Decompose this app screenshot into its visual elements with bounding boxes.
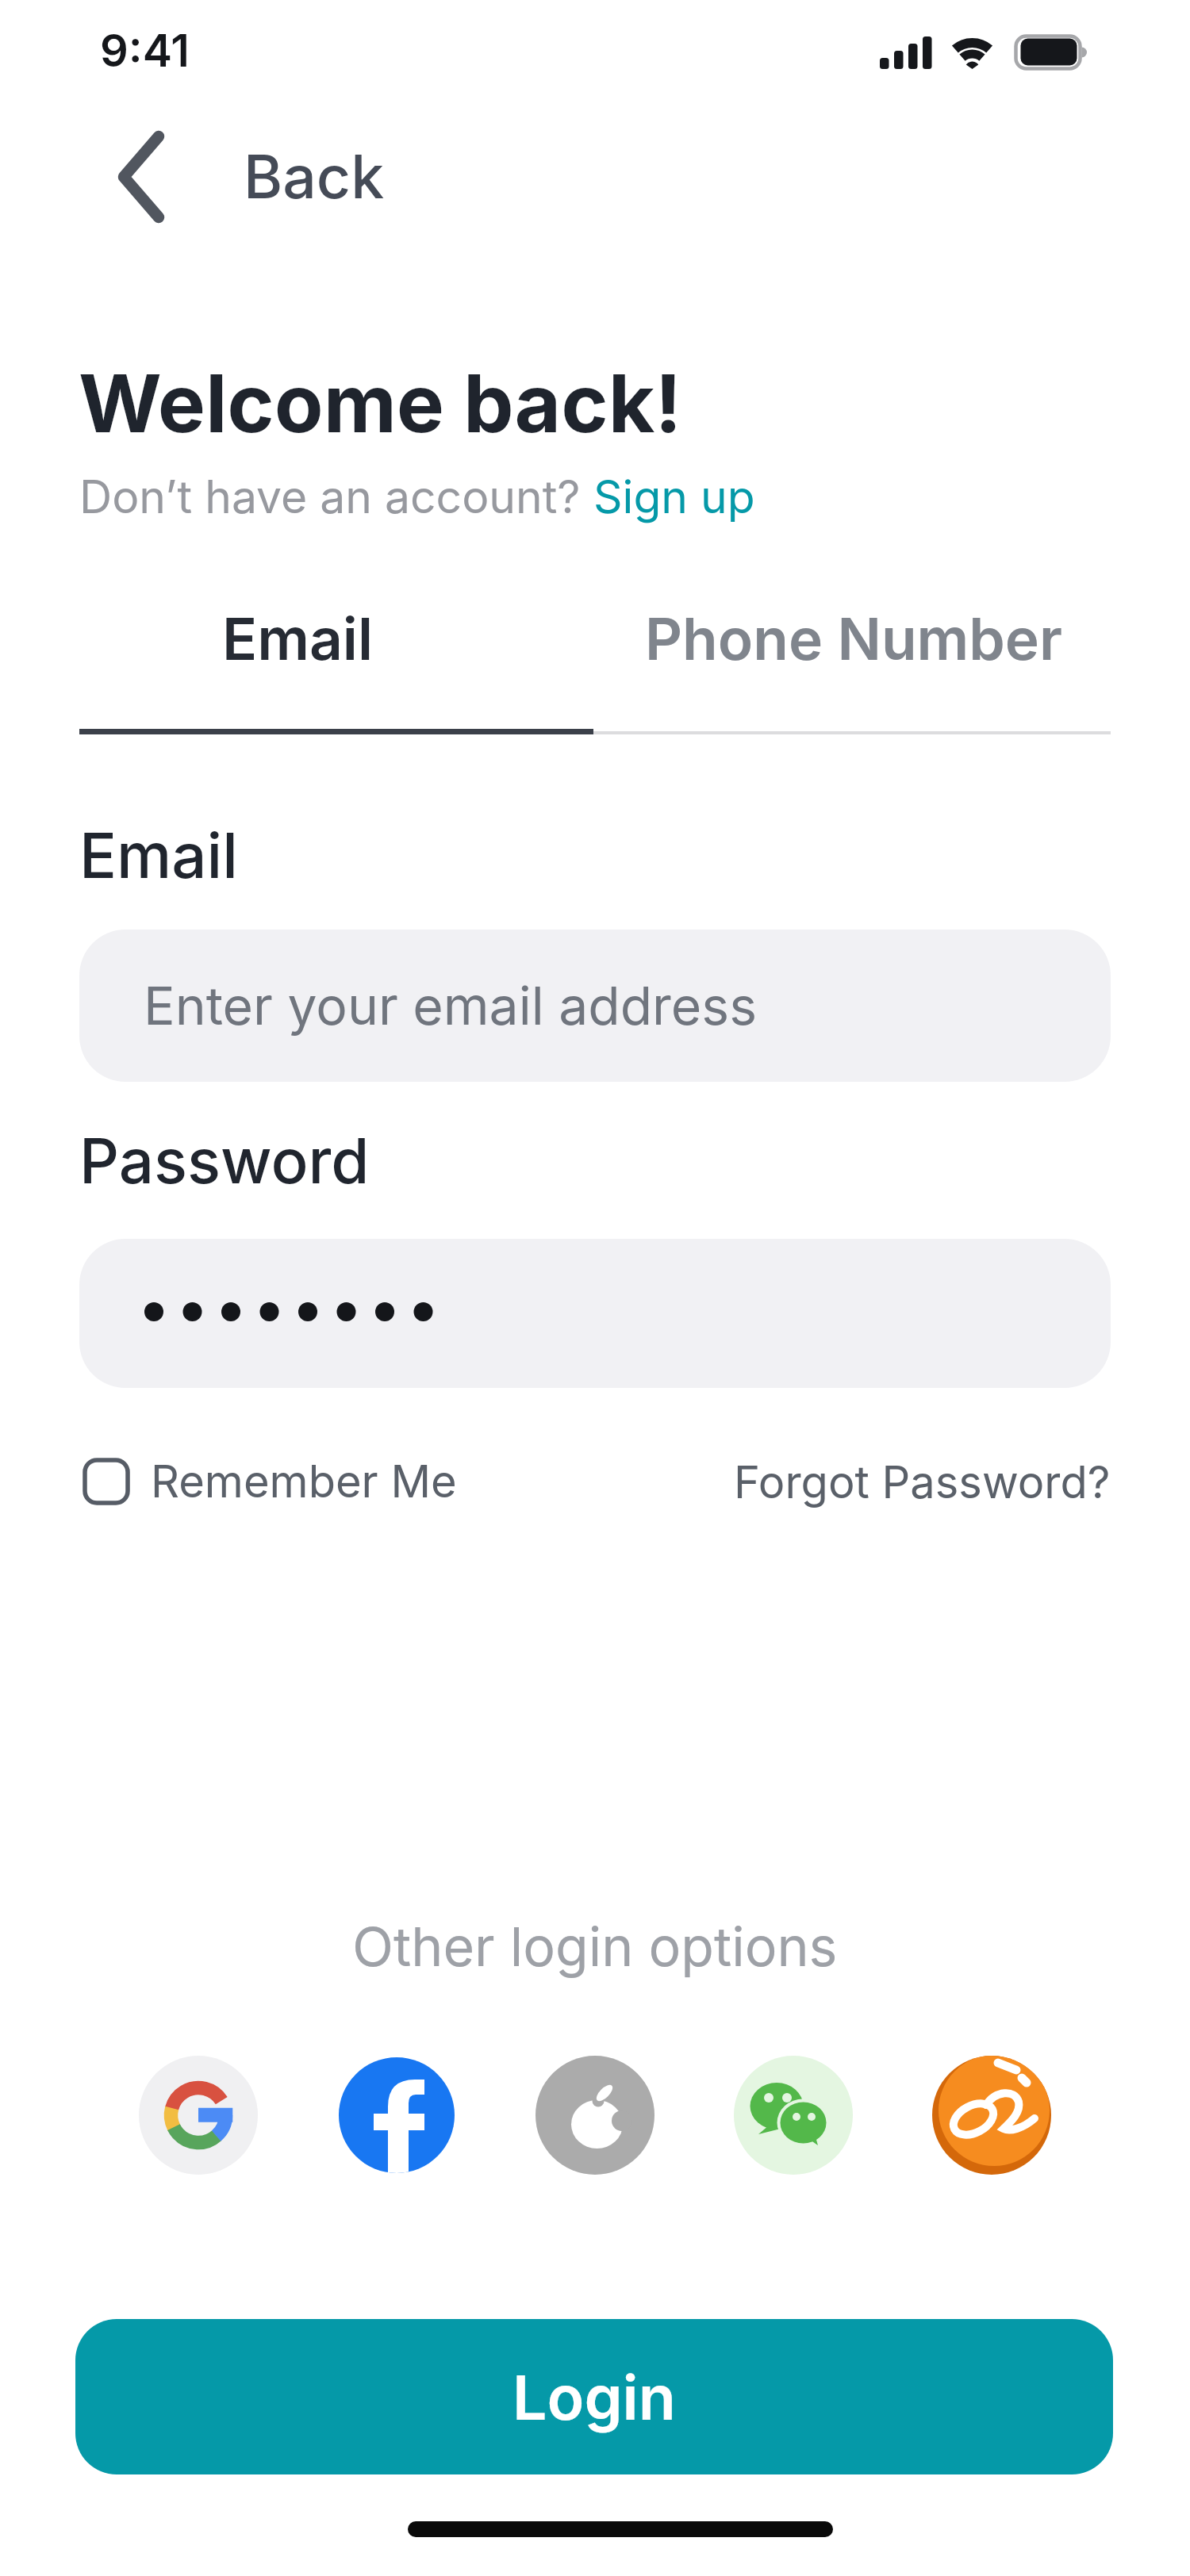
button[interactable]: Sign up [593,470,755,524]
button[interactable]: Remember Me [83,1453,457,1510]
staticText: Login [512,2360,676,2434]
button[interactable]: Back [111,127,385,226]
staticText: Email [79,818,238,892]
staticText: Enter your email address [144,974,757,1037]
staticText: Don’t have an account? [79,470,593,524]
staticText: 9:41 [100,24,190,78]
staticText: Back [244,140,385,213]
staticText: Remember Me [151,1455,457,1508]
button[interactable]: Login [75,2319,1113,2474]
button[interactable] [79,1239,1111,1388]
button[interactable] [535,2056,654,2175]
staticText: Phone Number [645,604,1063,673]
button[interactable]: Enter your email address [79,930,1111,1082]
button[interactable]: Email [79,587,595,734]
button[interactable]: Phone Number [595,587,1111,734]
button[interactable]: Forgot Password? [734,1455,1111,1509]
staticText: Welcome back! [79,355,682,451]
button[interactable] [734,2056,853,2175]
staticText: Other login options [352,1914,838,1979]
button[interactable] [139,2056,258,2175]
button[interactable] [932,2056,1051,2175]
staticText: Password [79,1123,370,1198]
staticText: Email [222,604,374,673]
button[interactable] [339,2057,455,2173]
